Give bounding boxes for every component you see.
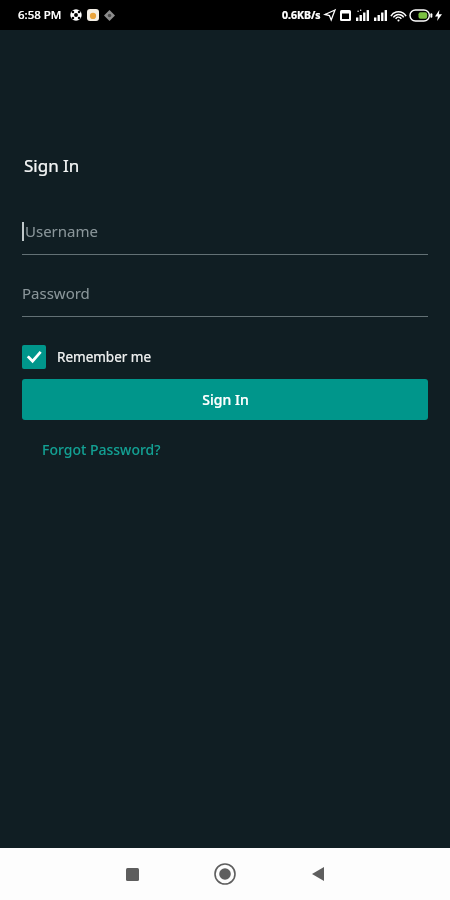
staticText: Username xyxy=(25,221,98,241)
button[interactable]: Back xyxy=(296,852,340,896)
staticText: Remember me xyxy=(57,348,152,366)
button[interactable]: Recent apps xyxy=(110,852,154,896)
button[interactable]: Home xyxy=(203,852,247,896)
button[interactable]: Username xyxy=(22,219,428,255)
button[interactable]: Remember me xyxy=(22,342,152,372)
staticText: Password xyxy=(22,283,90,303)
staticText: 6:58 PM xyxy=(18,7,62,23)
staticText: 0.6KB/s xyxy=(282,8,321,22)
staticText: Forgot Password? xyxy=(42,440,161,459)
staticText: Sign In xyxy=(202,390,249,409)
button[interactable]: Sign In xyxy=(22,379,428,420)
button[interactable]: Password xyxy=(22,281,428,317)
button[interactable]: Forgot Password? xyxy=(30,434,173,465)
staticText: Sign In xyxy=(24,154,80,177)
